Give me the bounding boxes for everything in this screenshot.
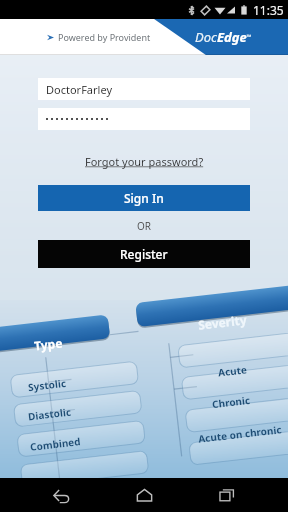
staticText: Combined bbox=[29, 434, 82, 454]
staticText: Powered by Provident bbox=[58, 31, 151, 43]
button[interactable]: DoctorFarley bbox=[38, 78, 250, 100]
staticText: DoctorFarley bbox=[46, 82, 112, 97]
staticText: Type bbox=[33, 334, 64, 354]
staticText: 11:35 bbox=[253, 2, 284, 18]
staticText: Sign In bbox=[124, 190, 164, 206]
staticText: Diastolic bbox=[27, 405, 73, 423]
button[interactable]: Recent apps bbox=[205, 478, 249, 512]
button[interactable]: Back bbox=[39, 478, 83, 512]
staticText: Register bbox=[120, 246, 168, 262]
staticText: Systolic bbox=[27, 376, 67, 394]
button[interactable]: Sign In bbox=[38, 185, 250, 211]
button[interactable] bbox=[38, 108, 250, 130]
staticText: DocEdge™ bbox=[195, 28, 252, 46]
staticText: Forgot your password? bbox=[85, 154, 204, 169]
staticText: Acute bbox=[217, 362, 248, 380]
staticText: Severity bbox=[197, 311, 248, 333]
button[interactable]: Forgot your password? bbox=[79, 152, 210, 171]
button[interactable]: Register bbox=[38, 240, 250, 268]
staticText: Chronic bbox=[211, 393, 252, 411]
button[interactable]: Home bbox=[122, 478, 166, 512]
staticText: Acute on chronic bbox=[197, 422, 282, 446]
staticText: OR bbox=[137, 219, 152, 233]
